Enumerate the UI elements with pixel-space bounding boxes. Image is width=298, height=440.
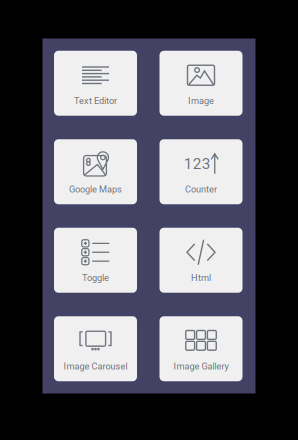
staticText: Image Carousel bbox=[63, 361, 127, 372]
staticText: Html bbox=[191, 272, 211, 283]
staticText: Image Gallery bbox=[173, 361, 228, 372]
button[interactable]: Image Gallery bbox=[159, 316, 242, 381]
button[interactable]: Image bbox=[159, 51, 242, 116]
staticText: Counter bbox=[185, 184, 217, 195]
button[interactable]: Toggle bbox=[54, 228, 137, 293]
button[interactable]: 123 bbox=[159, 139, 242, 204]
staticText: 123 bbox=[184, 155, 211, 173]
staticText: Text Editor bbox=[74, 95, 117, 106]
staticText: Image bbox=[188, 95, 214, 106]
staticText: Google Maps bbox=[69, 184, 122, 195]
button[interactable]: Text Editor bbox=[54, 51, 137, 116]
button[interactable]: Image Carousel bbox=[54, 316, 137, 381]
button[interactable]: Html bbox=[159, 228, 242, 293]
button[interactable]: Google Maps bbox=[54, 139, 137, 204]
staticText: Toggle bbox=[82, 272, 109, 283]
